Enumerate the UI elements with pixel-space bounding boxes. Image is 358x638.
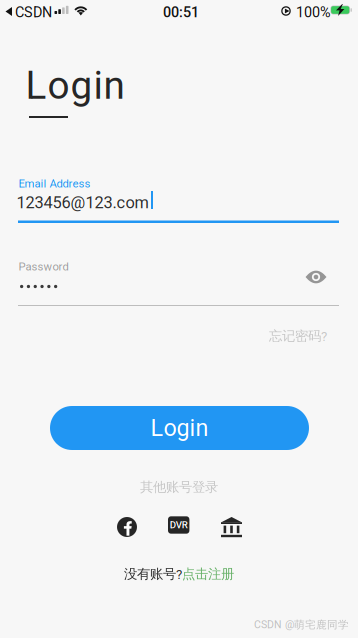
staticText: Password	[18, 260, 68, 273]
staticText: 00:51	[163, 4, 199, 21]
button[interactable]: Show password	[299, 263, 333, 291]
staticText: 没有账号?	[124, 566, 182, 582]
staticText: Login	[25, 63, 124, 108]
button[interactable]: Sign in with DVR	[168, 515, 189, 535]
staticText: 其他账号登录	[140, 479, 218, 495]
button[interactable]: 点击注册	[182, 566, 234, 582]
staticText: 123456@123.com	[16, 193, 148, 212]
button[interactable]: Sign in with Facebook	[117, 517, 137, 537]
staticText: 100%	[296, 4, 331, 21]
staticText: CSDN @萌宅鹿同学	[254, 618, 349, 631]
staticText: 点击注册	[182, 566, 234, 582]
staticText: Email Address	[18, 177, 90, 190]
staticText: DVR	[170, 519, 188, 531]
staticText: Login	[150, 414, 208, 442]
staticText: 忘记密码?	[269, 328, 327, 344]
staticText: CSDN	[15, 4, 52, 21]
button[interactable]: Sign in with bank	[221, 517, 242, 538]
button[interactable]: 忘记密码?	[262, 326, 334, 346]
button[interactable]: Login	[50, 406, 309, 450]
